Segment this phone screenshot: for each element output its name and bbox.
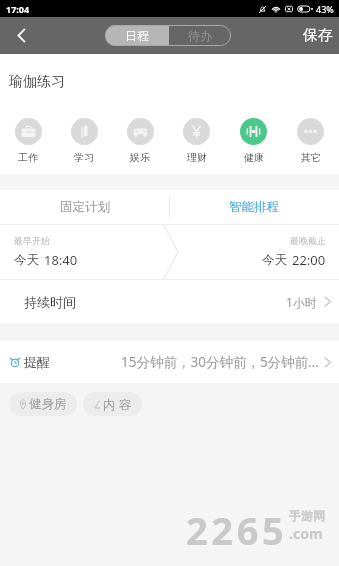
button[interactable]: 学习 <box>56 104 112 174</box>
button[interactable]: 娱乐 <box>112 104 168 174</box>
staticText: 日程 <box>125 28 149 43</box>
staticText: 17:04 <box>6 3 30 15</box>
staticText: 提醒 <box>24 354 50 370</box>
staticText: 15分钟前，30分钟前，5分钟前… <box>121 353 319 371</box>
staticText: 今天 <box>14 252 39 268</box>
staticText: 工作 <box>18 151 38 164</box>
button[interactable]: 其它 <box>282 104 339 174</box>
staticText: 智能排程 <box>229 199 279 215</box>
staticText: 理财 <box>187 151 207 164</box>
button[interactable]: 日程 <box>105 25 169 46</box>
staticText: 保存 <box>303 26 333 45</box>
staticText: 瑜伽练习 <box>9 73 65 91</box>
staticText: 持续时间 <box>24 294 76 310</box>
staticText: 18:40 <box>44 251 78 269</box>
button[interactable]: 持续时间 <box>0 280 339 323</box>
staticText: 内 容 <box>103 396 132 413</box>
staticText: 学习 <box>74 151 94 164</box>
staticText: 固定计划 <box>60 199 110 215</box>
button[interactable]: 智能排程 <box>169 190 339 224</box>
button[interactable]: 理财 <box>168 104 225 174</box>
button[interactable]: 健身房 <box>9 392 77 416</box>
button[interactable]: 待办 <box>169 25 231 46</box>
staticText: 22:00 <box>292 251 326 269</box>
staticText: 43% <box>316 3 334 15</box>
staticText: 1小时 <box>286 294 317 310</box>
staticText: .com <box>289 524 323 543</box>
button[interactable]: 提醒 <box>0 341 339 383</box>
button[interactable]: 最晚截止 <box>169 225 339 279</box>
button[interactable]: 固定计划 <box>0 190 169 224</box>
button[interactable]: 内 容 <box>83 392 142 416</box>
staticText: 娱乐 <box>130 151 150 164</box>
staticText: 手游网 <box>289 508 325 523</box>
staticText: 待办 <box>188 28 212 43</box>
button[interactable]: 最早开始 <box>0 225 169 279</box>
staticText: 健身房 <box>29 396 67 412</box>
button[interactable]: 保存 <box>293 17 339 54</box>
staticText: 最晚截止 <box>290 235 326 246</box>
button[interactable]: Back <box>0 17 43 54</box>
staticText: 今天 <box>262 252 287 268</box>
staticText: 健康 <box>244 151 264 164</box>
button[interactable]: 工作 <box>0 104 56 174</box>
staticText: 最早开始 <box>14 235 50 246</box>
button[interactable]: 健康 <box>225 104 282 174</box>
staticText: 2265 <box>186 504 288 556</box>
staticText: 其它 <box>301 151 321 164</box>
